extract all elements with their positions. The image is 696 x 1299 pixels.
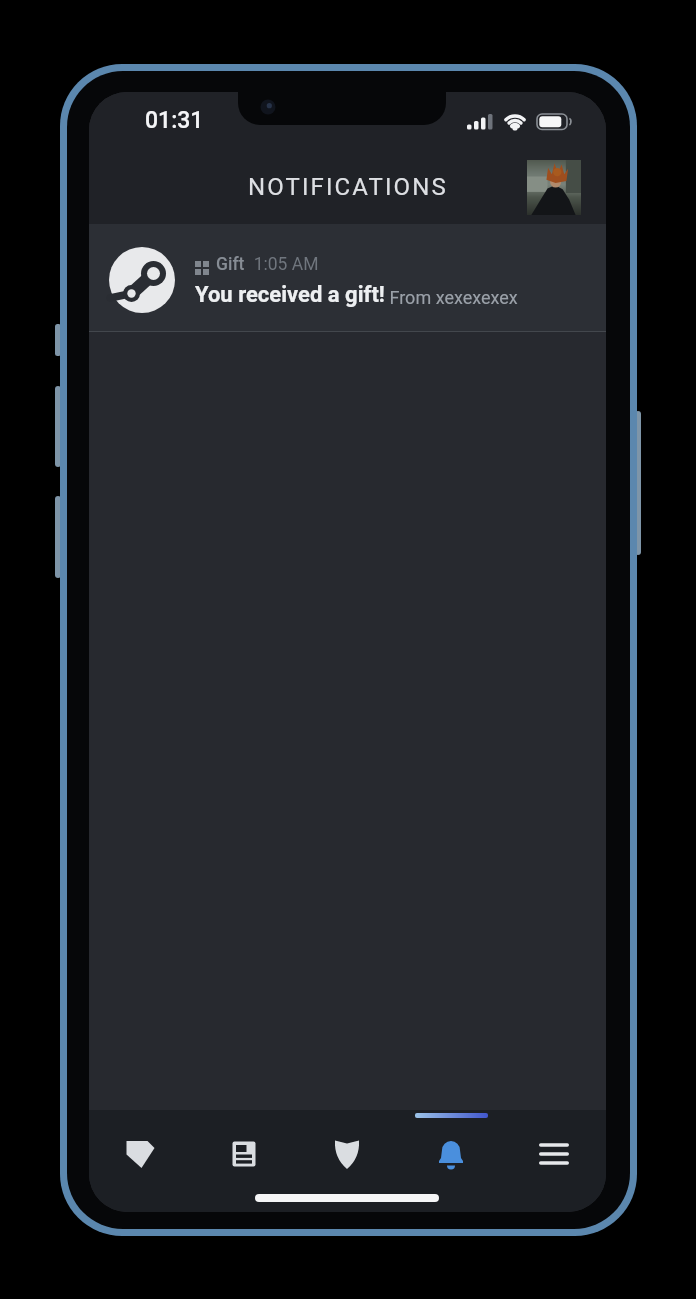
button[interactable]	[527, 160, 581, 215]
button[interactable]	[214, 1128, 274, 1180]
button[interactable]	[524, 1128, 584, 1180]
staticText: 01:31	[145, 107, 204, 134]
button[interactable]	[317, 1128, 377, 1180]
staticText: 1:05 AM	[245, 254, 319, 275]
staticText: From xexexexex	[385, 287, 518, 308]
button[interactable]	[111, 1128, 171, 1180]
staticText: You received a gift!	[195, 282, 385, 308]
button[interactable]	[89, 224, 606, 331]
button[interactable]	[421, 1128, 481, 1180]
staticText: NOTIFICATIONS	[248, 173, 448, 201]
staticText: Gift	[216, 254, 245, 275]
